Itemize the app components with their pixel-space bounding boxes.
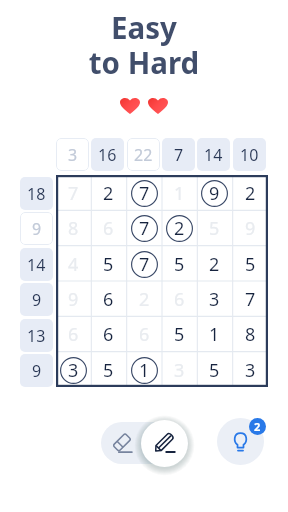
button[interactable]: 9 [20,354,53,387]
button[interactable]: 9 [56,281,91,316]
staticText: 5 [209,216,220,241]
staticText: 3 [174,358,185,383]
button[interactable]: 1 [127,352,162,387]
button[interactable]: 3 [233,352,268,387]
staticText: 5 [103,358,114,383]
staticText: 5 [209,358,220,383]
staticText: 2 [103,181,114,206]
button[interactable]: 13 [20,319,53,352]
button[interactable]: 5 [91,352,126,387]
staticText: 3 [68,358,79,383]
staticText: 16 [98,144,117,166]
button[interactable]: 3 [162,352,197,387]
staticText: 9 [245,216,256,241]
button[interactable]: 18 [20,177,53,210]
button[interactable]: 7 [127,210,162,245]
button[interactable]: 5 [162,316,197,351]
staticText: 2 [245,181,256,206]
staticText: 7 [174,144,184,166]
button[interactable]: 16 [91,138,124,171]
button[interactable]: 9 [20,283,53,316]
button[interactable]: Hint [217,418,264,465]
button[interactable]: 3 [197,281,232,316]
staticText: 9 [32,289,42,311]
staticText: 9 [68,287,79,312]
staticText: 8 [68,216,79,241]
staticText: 2 [254,419,261,434]
staticText: 6 [68,322,79,347]
button[interactable]: 7 [162,138,195,171]
staticText: 4 [68,252,79,277]
button[interactable]: Pencil [141,420,188,467]
staticText: 7 [68,181,79,206]
staticText: 9 [32,360,42,382]
staticText: 6 [139,322,150,347]
staticText: 7 [245,287,256,312]
button[interactable]: 5 [233,246,268,281]
staticText: 2 [139,287,150,312]
button[interactable]: 3 [56,352,91,387]
button[interactable]: 6 [56,316,91,351]
button[interactable]: 5 [197,352,232,387]
staticText: 7 [139,181,150,206]
staticText: 9 [32,218,42,240]
staticText: 3 [209,287,220,312]
staticText: 2 [209,252,220,277]
button[interactable]: 1 [197,316,232,351]
staticText: 18 [27,183,46,205]
button[interactable]: 2 [233,175,268,210]
button[interactable]: 6 [91,281,126,316]
button[interactable]: 14 [20,248,53,281]
staticText: 5 [103,252,114,277]
button[interactable]: 2 [91,175,126,210]
button[interactable]: 8 [56,210,91,245]
button[interactable]: 6 [91,316,126,351]
staticText: Easy to Hard [0,7,288,83]
button[interactable]: 9 [233,210,268,245]
button[interactable]: 9 [20,212,53,245]
button[interactable]: 7 [127,246,162,281]
button[interactable]: 1 [162,175,197,210]
staticText: 1 [209,322,220,347]
staticText: 1 [139,358,150,383]
button[interactable]: Eraser [101,422,143,464]
staticText: 6 [174,287,185,312]
button[interactable]: 7 [56,175,91,210]
button[interactable]: 14 [197,138,230,171]
staticText: 6 [103,287,114,312]
staticText: 22 [134,144,153,166]
button[interactable]: 2 [127,281,162,316]
button[interactable]: 22 [127,138,160,171]
staticText: 9 [209,181,220,206]
staticText: 5 [174,252,185,277]
button[interactable]: 8 [233,316,268,351]
staticText: 6 [103,322,114,347]
staticText: 3 [245,358,256,383]
staticText: 2 [174,216,185,241]
button[interactable]: 7 [127,175,162,210]
button[interactable]: 2 [162,210,197,245]
staticText: 5 [174,322,185,347]
button[interactable]: 3 [56,138,89,171]
button[interactable]: 5 [197,210,232,245]
staticText: 14 [27,254,46,276]
staticText: 1 [174,181,185,206]
staticText: 14 [204,144,223,166]
button[interactable]: 6 [162,281,197,316]
staticText: 7 [139,252,150,277]
button[interactable]: 4 [56,246,91,281]
button[interactable]: 7 [233,281,268,316]
button[interactable]: 5 [91,246,126,281]
staticText: 6 [103,216,114,241]
staticText: 3 [68,144,78,166]
button[interactable]: 5 [162,246,197,281]
staticText: 7 [139,216,150,241]
staticText: 13 [27,325,46,347]
button[interactable]: 6 [91,210,126,245]
staticText: 5 [245,252,256,277]
button[interactable]: 6 [127,316,162,351]
button[interactable]: 2 [197,246,232,281]
button[interactable]: 10 [233,138,266,171]
button[interactable]: 9 [197,175,232,210]
staticText: 10 [240,144,259,166]
